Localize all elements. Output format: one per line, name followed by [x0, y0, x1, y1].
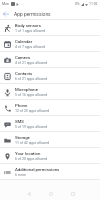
- staticText: 11 of 42 apps allowed: [15, 141, 50, 145]
- button[interactable]: Back: [23, 189, 34, 199]
- staticText: 5 of 19 apps allowed: [15, 125, 48, 129]
- staticText: 4 of 7 apps allowed: [15, 45, 46, 49]
- button[interactable]: Camera: [0, 52, 100, 68]
- staticText: Contacts: [15, 71, 33, 76]
- button[interactable]: Additional permissions: [0, 164, 100, 180]
- staticText: 6 of 21 apps allowed: [15, 77, 48, 81]
- button[interactable]: Calendar: [0, 36, 100, 52]
- staticText: 4 of 21 apps allowed: [15, 61, 48, 65]
- staticText: Storage: [15, 135, 30, 140]
- button[interactable]: Body sensors: [0, 20, 100, 36]
- staticText: 6 more: [15, 173, 26, 177]
- staticText: 1 of 1 apps allowed: [15, 29, 46, 33]
- staticText: 6 of 20 apps allowed: [15, 157, 48, 161]
- staticText: Mon: [2, 2, 10, 6]
- staticText: Microphone: [15, 87, 38, 92]
- button[interactable]: Home: [45, 189, 56, 199]
- button[interactable]: SMS: [0, 116, 100, 132]
- staticText: 12 of 23 apps allowed: [15, 109, 50, 113]
- staticText: Additional permissions: [15, 167, 60, 172]
- button[interactable]: Contacts: [0, 68, 100, 84]
- staticText: Body sensors: [15, 23, 42, 28]
- staticText: Calendar: [15, 39, 33, 44]
- button[interactable]: Phone: [0, 100, 100, 116]
- button[interactable]: Back: [0, 8, 11, 20]
- staticText: 0%: [75, 2, 80, 6]
- staticText: App permissions: [14, 11, 51, 17]
- staticText: 5 of 16 apps allowed: [15, 93, 48, 97]
- staticText: Phone: [15, 103, 28, 108]
- staticText: SMS: [15, 119, 24, 124]
- staticText: Camera: [15, 55, 30, 60]
- button[interactable]: Storage: [0, 132, 100, 148]
- button[interactable]: Microphone: [0, 84, 100, 100]
- staticText: Your location: [15, 151, 41, 156]
- button[interactable]: Recents: [67, 189, 78, 199]
- button[interactable]: Your location: [0, 148, 100, 164]
- staticText: 11:02: [89, 2, 98, 6]
